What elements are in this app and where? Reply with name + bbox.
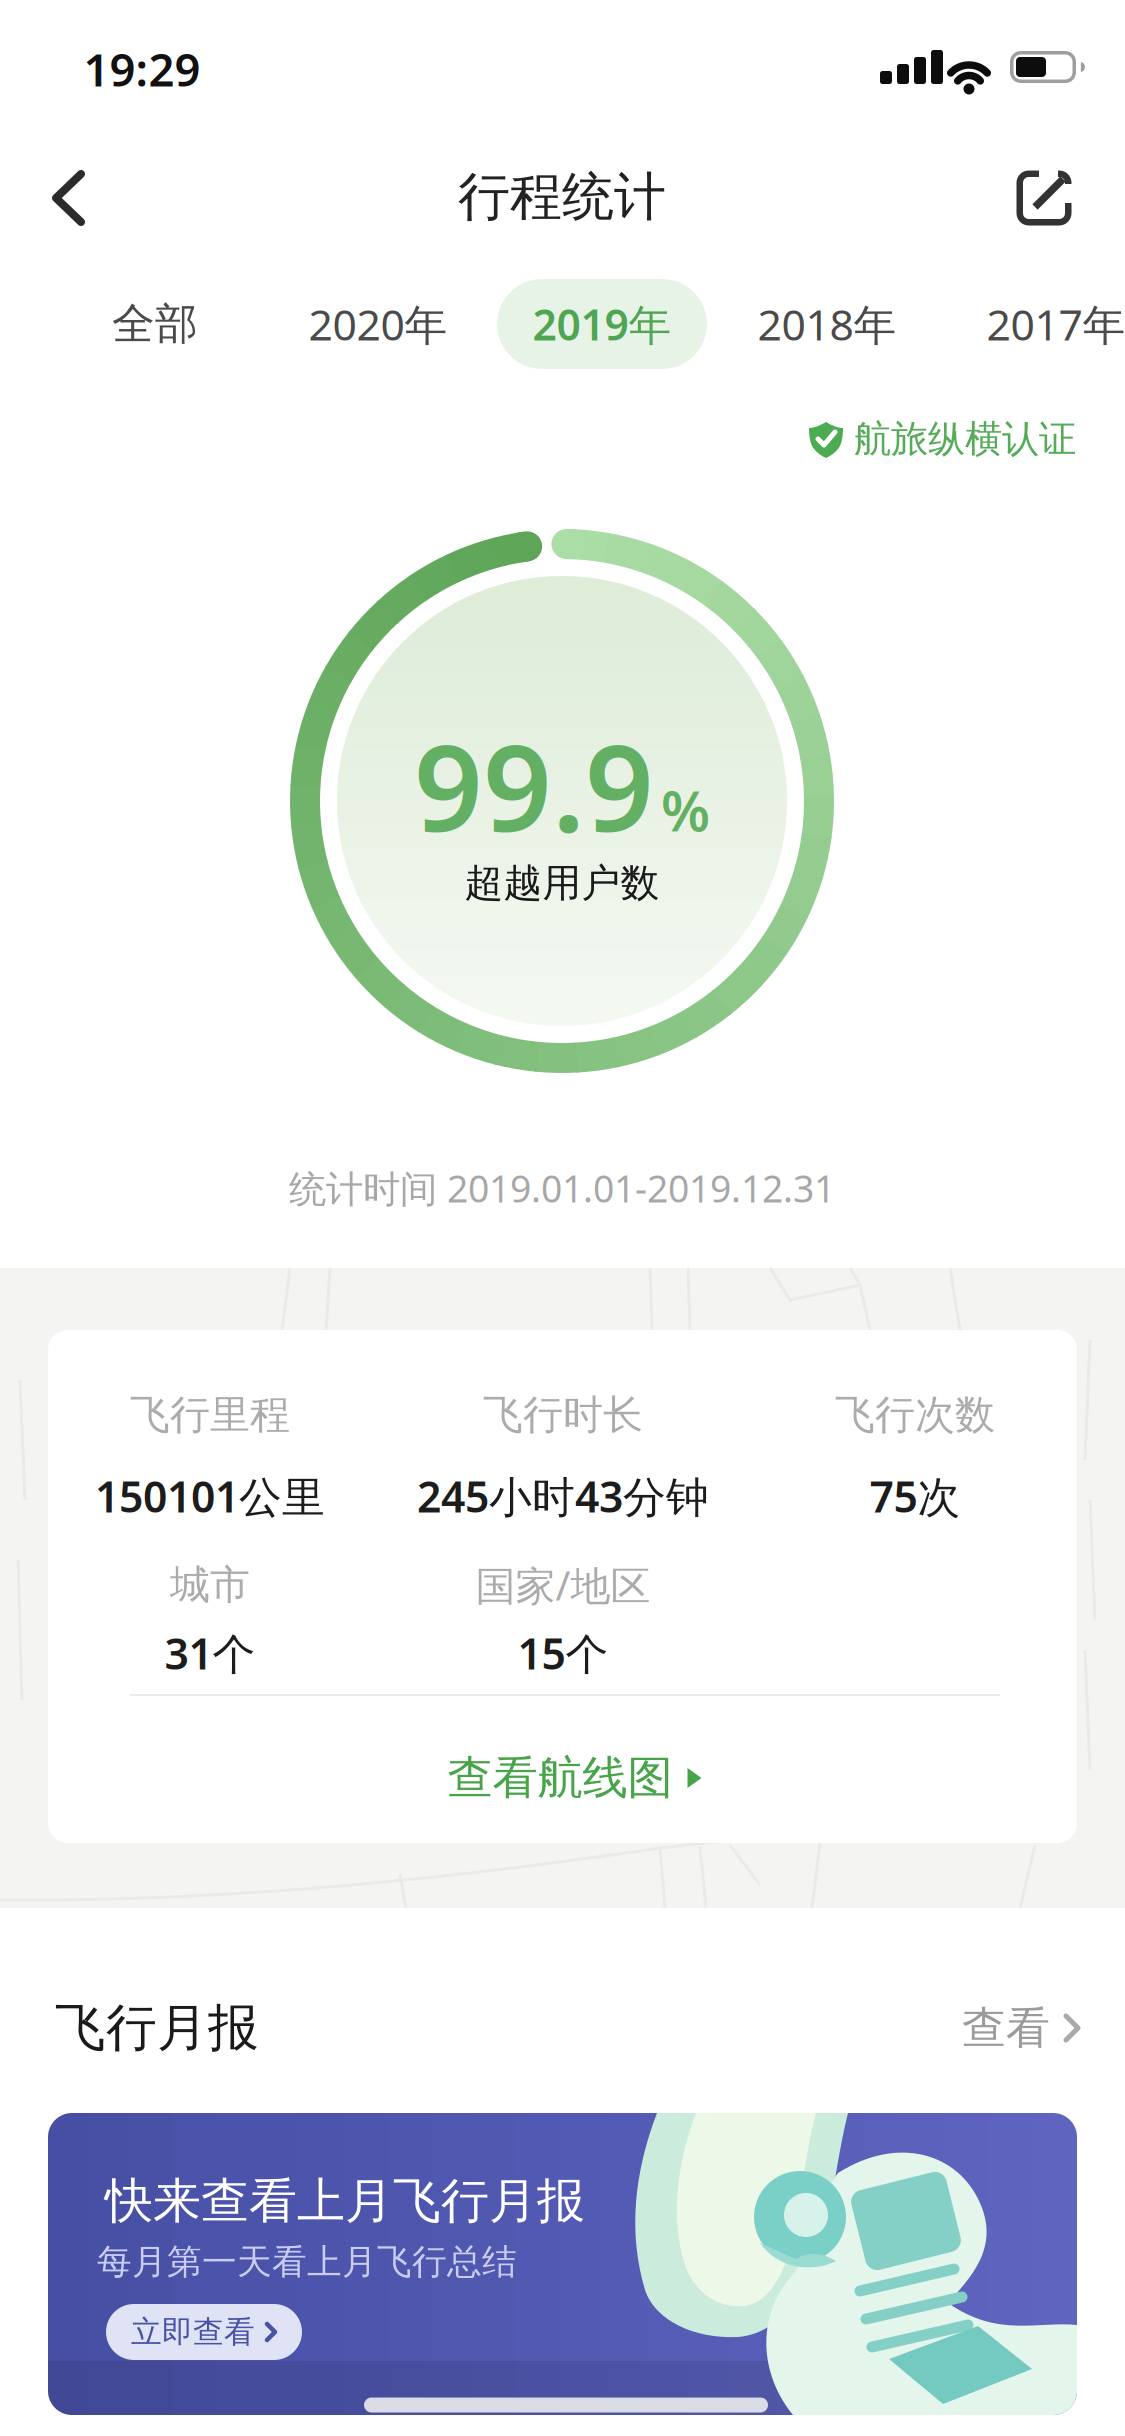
staticText: 31个	[164, 1625, 255, 1681]
staticText: 立即查看	[131, 2313, 255, 2351]
staticText: 城市	[170, 1560, 250, 1609]
button[interactable]: 2019年	[497, 279, 707, 369]
staticText: 飞行月报	[55, 1997, 259, 2059]
staticText: 统计时间 2019.01.01-2019.12.31	[289, 1163, 835, 1213]
staticText: 飞行时长	[483, 1390, 643, 1439]
staticText: 245小时43分钟	[417, 1468, 709, 1524]
staticText: 全部	[112, 298, 198, 350]
staticText: 查看	[962, 2001, 1050, 2055]
staticText: 飞行里程	[130, 1390, 290, 1439]
button[interactable]: 查看航线图	[447, 1750, 702, 1806]
staticText: 2019年	[532, 296, 671, 352]
staticText: 15个	[517, 1625, 608, 1681]
staticText: 19:29	[83, 39, 200, 99]
button[interactable]: Share	[999, 153, 1089, 243]
staticText: 75次	[869, 1468, 960, 1524]
staticText: %	[661, 773, 710, 847]
button[interactable]: 查看	[962, 2001, 1082, 2055]
staticText: 国家/地区	[475, 1558, 650, 1611]
staticText: 查看航线图	[447, 1750, 672, 1806]
button[interactable]: Back	[37, 166, 101, 230]
button[interactable]: 2017年	[986, 296, 1125, 352]
staticText: 快来查看上月飞行月报	[105, 2171, 585, 2230]
staticText: 飞行次数	[835, 1390, 995, 1439]
staticText: 航旅纵横认证	[854, 416, 1076, 462]
staticText: 2018年	[757, 296, 896, 352]
button[interactable]: 2018年	[757, 296, 896, 352]
staticText: 99.9	[414, 705, 654, 865]
staticText: 行程统计	[458, 165, 666, 229]
staticText: 每月第一天看上月飞行总结	[97, 2241, 517, 2283]
staticText: 超越用户数	[464, 859, 659, 907]
staticText: 2020年	[308, 296, 447, 352]
button[interactable]: 全部	[112, 298, 198, 350]
staticText: 150101公里	[95, 1468, 325, 1524]
button[interactable]: 2020年	[308, 296, 447, 352]
button[interactable]: 立即查看	[106, 2304, 302, 2360]
staticText: 2017年	[986, 296, 1125, 352]
button[interactable]: 快来查看上月飞行月报	[48, 2113, 1077, 2415]
